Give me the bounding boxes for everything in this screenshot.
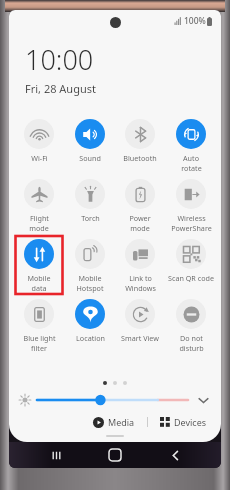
staticText: Location	[76, 333, 105, 343]
staticText: Devices	[174, 416, 207, 428]
button[interactable]: Do not	[166, 294, 216, 353]
staticText: 100%	[184, 15, 206, 27]
button[interactable]: Expand	[195, 392, 211, 408]
staticText: Bluetooth	[123, 153, 157, 163]
staticText: Flight	[30, 213, 49, 223]
button[interactable]: Wi-Fi	[14, 114, 64, 163]
staticText: Sound	[79, 153, 101, 163]
button[interactable]: Location	[65, 294, 115, 343]
button[interactable]: Power	[115, 174, 165, 233]
button[interactable]	[37, 393, 188, 407]
staticText: rotate	[181, 163, 202, 173]
staticText: Mobile	[78, 273, 102, 283]
button[interactable]: Wireless	[166, 174, 216, 233]
button[interactable]: Back	[162, 442, 188, 468]
staticText: Smart View	[121, 333, 159, 343]
staticText: Media	[108, 416, 135, 428]
button[interactable]: Home	[102, 442, 128, 468]
button[interactable]: Mobile	[65, 234, 115, 293]
staticText: mode	[29, 223, 49, 233]
button[interactable]: Flight	[14, 174, 64, 233]
staticText: mode	[130, 223, 150, 233]
staticText: Link to	[129, 273, 152, 283]
button[interactable]: Sound	[65, 114, 115, 163]
staticText: Scan QR code	[168, 273, 214, 283]
button[interactable]: Torch	[65, 174, 115, 223]
staticText: Do not	[180, 333, 203, 343]
button[interactable]: Link to	[115, 234, 165, 293]
staticText: PowerShare	[171, 223, 212, 233]
button[interactable]: Bluetooth	[115, 114, 165, 163]
staticText: Windows	[125, 283, 156, 293]
staticText: 10:00	[25, 41, 94, 78]
staticText: Wireless	[177, 213, 206, 223]
staticText: disturb	[179, 343, 204, 353]
staticText: filter	[31, 343, 47, 353]
button[interactable]: Auto	[166, 114, 216, 173]
staticText: Auto	[183, 153, 199, 163]
button[interactable]: Scan QR code	[166, 234, 216, 283]
staticText: Hotspot	[76, 283, 104, 293]
button[interactable]: Smart View	[115, 294, 165, 343]
staticText: Fri, 28 August	[25, 81, 96, 96]
staticText: Blue light	[23, 333, 56, 343]
staticText: Wi-Fi	[31, 153, 48, 163]
button[interactable]: Blue light	[14, 294, 64, 353]
staticText: Mobile	[27, 273, 51, 283]
button[interactable]: Mobile	[14, 234, 64, 293]
staticText: Torch	[81, 213, 100, 223]
staticText: Power	[129, 213, 151, 223]
button[interactable]: Media	[91, 414, 137, 430]
staticText: data	[31, 283, 47, 293]
button[interactable]: Devices	[158, 414, 209, 430]
button[interactable]: Recents	[43, 442, 69, 468]
